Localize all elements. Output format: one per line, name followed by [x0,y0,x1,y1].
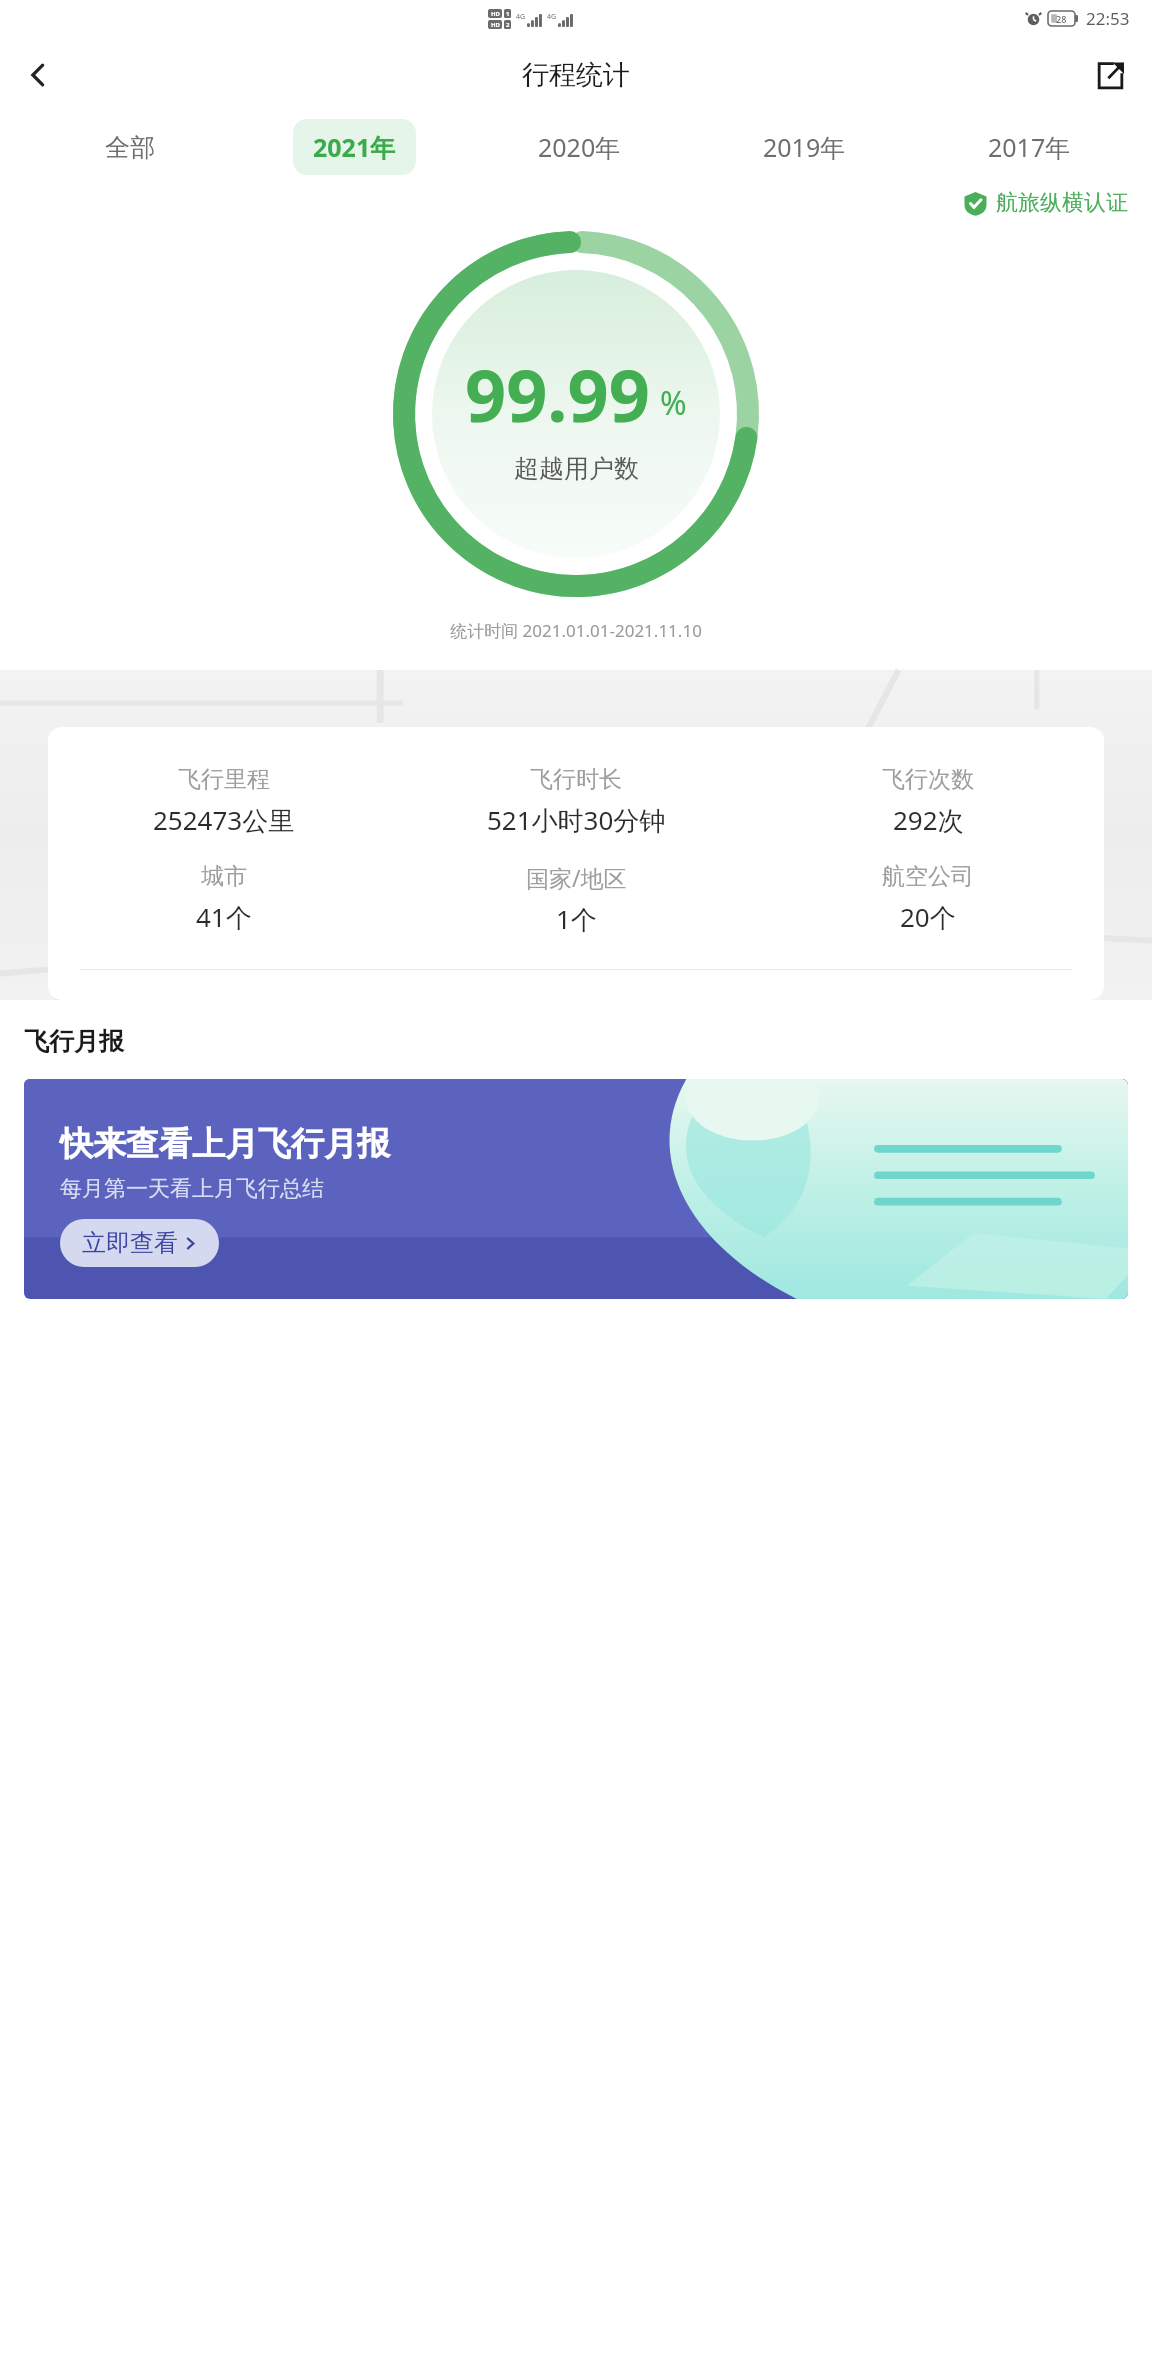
staticText: 20个 [900,899,956,935]
staticText: 521小时30分钟 [487,802,666,838]
button[interactable]: 2017年 [917,119,1142,175]
staticText: 飞行里程 [178,765,270,794]
staticText: 统计时间 2021.01.01-2021.11.10 [0,619,1152,642]
staticText: 28 [1056,13,1067,25]
staticText: 2021年 [313,130,396,164]
staticText: 292次 [893,802,964,838]
staticText: 2017年 [988,130,1071,164]
staticText: 城市 [201,862,247,891]
staticText: % [660,381,687,425]
staticText: 全部 [105,132,155,163]
staticText: 立即查看 [82,1228,178,1258]
staticText: 2020年 [538,130,621,164]
staticText: 99.99 [465,345,650,443]
button[interactable]: Share [1082,47,1138,103]
staticText: 2019年 [763,130,846,164]
staticText: 每月第一天看上月飞行总结 [60,1175,324,1203]
button[interactable]: 2020年 [467,119,692,175]
button[interactable]: 航旅纵横认证 [963,189,1128,217]
staticText: 超越用户数 [514,453,639,484]
staticText: 飞行月报 [24,1026,124,1057]
staticText: 2 [506,21,510,29]
button[interactable]: 2019年 [692,119,917,175]
staticText: 国家/地区 [526,862,627,893]
staticText: 41个 [196,899,252,935]
button[interactable]: Back [10,47,66,103]
button[interactable]: 全部 [18,121,242,174]
button[interactable]: 立即查看 [60,1219,219,1267]
staticText: 行程统计 [522,58,630,92]
staticText: 1 [506,10,510,18]
staticText: 22:53 [1086,7,1130,30]
staticText: 飞行时长 [530,765,622,794]
staticText: 航空公司 [882,862,974,891]
staticText: 航旅纵横认证 [996,189,1128,217]
staticText: HD [491,10,500,18]
button[interactable]: 2021年 [242,119,467,175]
staticText: 1个 [556,901,597,937]
staticText: 252473公里 [153,802,295,838]
staticText: 4G [547,12,557,22]
button[interactable]: 快来查看上月飞行月报 [24,1079,1128,1299]
staticText: 4G [516,12,526,22]
staticText: HD [491,21,500,29]
staticText: 快来查看上月飞行月报 [60,1123,390,1165]
staticText: 飞行次数 [882,765,974,794]
